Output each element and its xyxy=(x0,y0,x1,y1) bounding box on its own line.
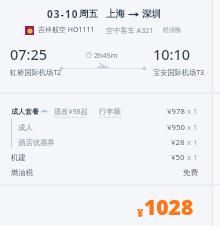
staticText: 成人 xyxy=(18,123,33,132)
staticText: 1028 xyxy=(144,193,194,222)
staticText: 退改¥98起 xyxy=(54,106,88,116)
staticText: x 1 xyxy=(187,152,198,163)
staticText: 03-10 xyxy=(47,7,79,21)
staticText: 10:10 xyxy=(153,44,191,64)
staticText: ¥ xyxy=(137,205,144,220)
staticText: 成人套餐 xyxy=(11,107,39,116)
staticText: ¥950 xyxy=(167,122,185,133)
staticText: x 1 xyxy=(187,122,198,133)
staticText: 酒店优惠券 xyxy=(18,138,55,147)
staticText: 07:25 xyxy=(10,44,48,64)
staticText: ¥50 xyxy=(171,152,185,163)
staticText: 空中客车 A321 xyxy=(106,25,154,35)
staticText: x 1 xyxy=(187,137,198,148)
staticText: 虹桥国际机场T2 xyxy=(10,67,62,77)
staticText: 机建 xyxy=(11,153,26,162)
staticText: ¥28 xyxy=(171,137,185,148)
staticText: 经济舱 xyxy=(163,26,181,34)
staticText: x 1 xyxy=(187,106,198,117)
staticText: 2h45m xyxy=(94,50,118,60)
staticText: 吉祥航空 HO1111 xyxy=(38,25,95,35)
staticText: 免费 xyxy=(183,168,198,177)
staticText: 行李额 xyxy=(99,107,121,116)
staticText: 宝安国际机场T3 xyxy=(153,67,205,77)
staticText: 上海 xyxy=(106,8,125,20)
staticText: 深圳 xyxy=(142,8,161,20)
staticText: 燃油税 xyxy=(11,168,34,177)
staticText: 周五 xyxy=(79,8,98,20)
staticText: ¥978 xyxy=(167,106,185,117)
